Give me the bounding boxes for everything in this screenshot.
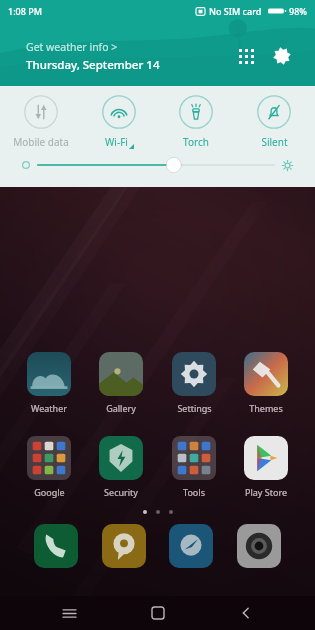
- staticText: Google: [34, 486, 65, 498]
- staticText: Silent: [261, 135, 288, 149]
- staticText: Play Store: [245, 486, 287, 498]
- button[interactable]: [38, 156, 274, 174]
- staticText: Mobile data: [13, 135, 69, 149]
- staticText: Torch: [183, 135, 209, 149]
- button[interactable]: Phone: [34, 524, 78, 568]
- staticText: 1:08 PM: [8, 5, 42, 17]
- button[interactable]: Browser: [169, 524, 213, 568]
- staticText: Security: [104, 486, 138, 498]
- button[interactable]: Wi-Fi: [82, 95, 156, 149]
- button[interactable]: Google: [15, 436, 83, 498]
- staticText: No SIM card: [209, 5, 262, 17]
- button[interactable]: All apps: [229, 39, 263, 73]
- button[interactable]: Silent: [237, 95, 311, 149]
- button[interactable]: Messaging: [102, 524, 146, 568]
- staticText: Tools: [183, 486, 205, 498]
- button[interactable]: Tools: [160, 436, 228, 498]
- button[interactable]: Weather: [15, 352, 83, 414]
- staticText: Weather: [31, 402, 67, 414]
- button[interactable]: Back: [226, 596, 266, 630]
- staticText: 98%: [289, 5, 307, 17]
- button[interactable]: Play Store: [232, 436, 300, 498]
- button[interactable]: Torch: [159, 95, 233, 149]
- staticText: Gallery: [106, 402, 136, 414]
- staticText: Themes: [249, 402, 283, 414]
- staticText: Settings: [177, 402, 212, 414]
- button[interactable]: Camera: [237, 524, 281, 568]
- button[interactable]: Settings: [263, 37, 301, 75]
- staticText: Thursday, September 14: [26, 57, 160, 73]
- button[interactable]: Get weather info >: [26, 40, 229, 73]
- button[interactable]: Themes: [232, 352, 300, 414]
- button[interactable]: Menu: [49, 596, 89, 630]
- button[interactable]: Home: [138, 596, 178, 630]
- button[interactable]: Security: [87, 436, 155, 498]
- button[interactable]: Mobile data: [4, 95, 78, 149]
- staticText: Get weather info >: [26, 40, 118, 54]
- button[interactable]: Settings: [160, 352, 228, 414]
- button[interactable]: Gallery: [87, 352, 155, 414]
- staticText: Wi-Fi: [105, 135, 128, 149]
